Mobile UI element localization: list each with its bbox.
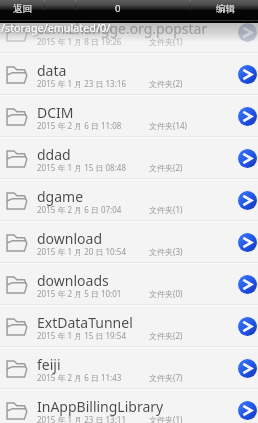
- button[interactable]: 返回: [0, 0, 44, 19]
- staticText: 2015 年 2 月 6 日 11:08: [37, 120, 122, 131]
- staticText: downloads: [37, 271, 237, 290]
- button[interactable]: Open folder: [237, 64, 258, 85]
- button[interactable]: ddad: [0, 138, 258, 180]
- staticText: 文件夹(3): [149, 246, 183, 257]
- button[interactable]: Open folder: [237, 106, 258, 127]
- staticText: 2015 年 2 月 5 日 10:01: [37, 288, 122, 299]
- button[interactable]: Open folder: [237, 274, 258, 295]
- staticText: 0: [115, 2, 121, 15]
- staticText: data: [37, 61, 237, 80]
- staticText: 文件夹(1): [149, 204, 183, 215]
- button[interactable]: download: [0, 222, 258, 264]
- button[interactable]: downloads: [0, 264, 258, 306]
- staticText: InAppBillingLibrary: [37, 397, 237, 416]
- button[interactable]: InAppBillingLibrary: [0, 390, 258, 423]
- staticText: 2015 年 2 月 6 日 07:04: [37, 204, 122, 215]
- staticText: 返回: [13, 3, 32, 15]
- staticText: 编辑: [216, 3, 235, 15]
- staticText: 文件夹(7): [149, 372, 183, 383]
- staticText: download: [37, 229, 237, 248]
- staticText: 2015 年 2 月 6 日 11:43: [37, 372, 122, 383]
- staticText: dgame: [37, 187, 237, 206]
- staticText: /storage/emulated/0/: [1, 20, 111, 35]
- staticText: ddad: [37, 145, 237, 164]
- staticText: 文件夹(2): [149, 330, 183, 341]
- staticText: 文件夹(0): [149, 288, 183, 299]
- button[interactable]: DCIM: [0, 96, 258, 138]
- staticText: 文件夹(1): [149, 36, 183, 47]
- button[interactable]: data: [0, 54, 258, 96]
- button[interactable]: 编辑: [192, 0, 258, 19]
- button[interactable]: feiji: [0, 348, 258, 390]
- button[interactable]: com.zhangge.org.popstar: [0, 12, 258, 54]
- staticText: 2015 年 1 月 15 日 19:54: [37, 330, 126, 341]
- button[interactable]: 0: [44, 0, 192, 19]
- staticText: 文件夹(14): [149, 120, 187, 131]
- button[interactable]: Open folder: [237, 190, 258, 211]
- button[interactable]: Open folder: [237, 316, 258, 337]
- staticText: 文件夹(1): [149, 414, 183, 423]
- staticText: 2015 年 1 月 23 日 13:16: [37, 78, 126, 89]
- staticText: 2015 年 1 月 20 日 10:54: [37, 246, 126, 257]
- staticText: ExtDataTunnel: [37, 313, 237, 332]
- staticText: 2015 年 1 月 8 日 19:26: [37, 36, 122, 47]
- button[interactable]: Open folder: [237, 148, 258, 169]
- button[interactable]: Open folder: [237, 22, 258, 43]
- staticText: DCIM: [37, 103, 237, 122]
- staticText: 2015 年 1 月 15 日 08:48: [37, 162, 126, 173]
- staticText: com.zhangge.org.popstar: [37, 19, 237, 38]
- staticText: feiji: [37, 355, 237, 374]
- staticText: 文件夹(2): [149, 78, 183, 89]
- button[interactable]: dgame: [0, 180, 258, 222]
- staticText: 文件夹(2): [149, 162, 183, 173]
- button[interactable]: Open folder: [237, 232, 258, 253]
- button[interactable]: Open folder: [237, 358, 258, 379]
- button[interactable]: ExtDataTunnel: [0, 306, 258, 348]
- button[interactable]: Open folder: [237, 400, 258, 421]
- staticText: 2015 年 1 月 23 日 13:11: [37, 414, 126, 423]
